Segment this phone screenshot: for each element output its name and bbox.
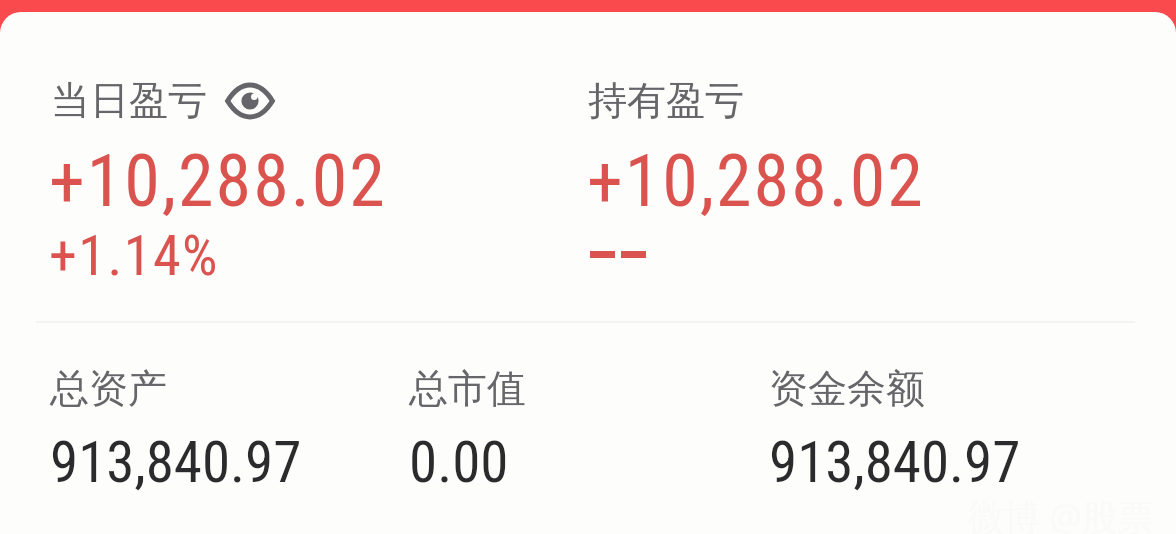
staticText: +1.14% [49,223,219,289]
staticText: 当日盈亏 [51,76,207,125]
staticText: 0.00 [409,429,509,496]
staticText: 913,840.97 [50,429,302,496]
staticText: 持有盈亏 [588,76,744,125]
button[interactable] [575,62,935,282]
button[interactable]: Toggle amount visibility [224,81,276,121]
button[interactable] [757,356,1090,504]
button[interactable] [397,356,730,504]
button[interactable] [38,62,288,282]
staticText: +10,288.02 [49,139,387,223]
staticText: +10,288.02 [587,139,925,223]
button[interactable] [38,356,371,504]
staticText: 总资产 [50,364,167,413]
staticText: 总市值 [409,364,526,413]
staticText: 913,840.97 [769,429,1021,496]
staticText: 资金余额 [769,364,925,413]
